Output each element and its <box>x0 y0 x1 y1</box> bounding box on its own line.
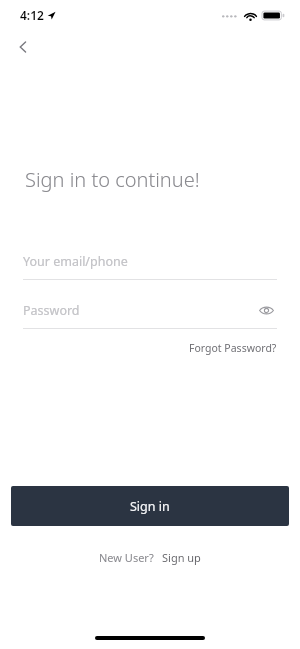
button[interactable]: Back <box>8 32 38 62</box>
staticText: Sign in <box>130 498 170 515</box>
button[interactable]: Your email/phone <box>23 249 277 280</box>
staticText: 4:12 <box>20 7 44 23</box>
staticText: Password <box>23 302 255 319</box>
button[interactable]: Show password <box>255 299 277 321</box>
staticText: Sign in to continue! <box>25 166 200 193</box>
button[interactable]: Sign up <box>162 550 201 565</box>
staticText: Sign up <box>162 550 201 565</box>
staticText: Forgot Password? <box>189 341 277 355</box>
button[interactable]: Forgot Password? <box>189 339 277 357</box>
button[interactable]: Sign in <box>11 486 289 526</box>
staticText: Your email/phone <box>23 253 128 270</box>
button[interactable]: Password <box>23 298 277 329</box>
staticText: New User? <box>99 550 154 565</box>
